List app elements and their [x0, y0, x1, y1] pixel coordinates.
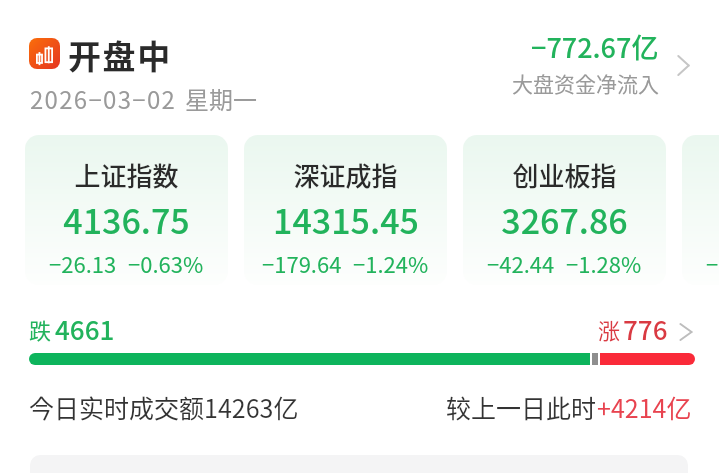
staticText: 较上一日此时: [446, 389, 597, 425]
staticText: 4661: [55, 310, 115, 346]
staticText: 今日实时成交额14263亿: [29, 389, 299, 425]
button[interactable]: −772.67亿: [463, 27, 659, 98]
staticText: 2026−03−02: [30, 81, 177, 116]
staticText: −42.44: [487, 247, 555, 279]
button[interactable]: 跌: [29, 310, 115, 346]
staticText: 跌: [29, 313, 52, 345]
staticText: −1.28%: [566, 247, 642, 279]
staticText: 4136.75: [63, 195, 190, 244]
staticText: −0.63%: [128, 247, 204, 279]
button[interactable]: 行情: [29, 38, 60, 69]
staticText: 星期一: [185, 81, 257, 116]
button[interactable]: 今日实时成交额14263亿: [29, 389, 299, 425]
staticText: 涨: [598, 313, 621, 345]
staticText: 创业板指: [512, 156, 617, 194]
staticText: 776: [623, 310, 668, 346]
staticText: −11.20: [706, 247, 719, 279]
staticText: 大盘资金净流入: [512, 68, 659, 98]
staticText: 深证成指: [293, 156, 398, 194]
staticText: +4214亿: [597, 389, 692, 425]
staticText: −179.64: [262, 247, 342, 279]
button[interactable]: 上证指数: [25, 135, 228, 285]
staticText: −1.24%: [353, 247, 429, 279]
staticText: 上证指数: [74, 156, 179, 194]
button[interactable]: 较上一日此时: [446, 389, 692, 425]
button[interactable]: 涨: [598, 310, 696, 346]
staticText: −26.13: [49, 247, 117, 279]
button[interactable]: 深证成指: [244, 135, 447, 285]
staticText: −772.67亿: [531, 27, 659, 66]
other: 涨跌家数详情: [672, 318, 700, 346]
staticText: 14315.45: [273, 195, 419, 244]
staticText: 开盘中: [68, 31, 172, 79]
staticText: 3267.86: [501, 195, 628, 244]
button[interactable]: 科创50: [682, 135, 719, 285]
button[interactable]: 创业板指: [463, 135, 666, 285]
button[interactable]: 资金流入详情: [668, 50, 699, 81]
